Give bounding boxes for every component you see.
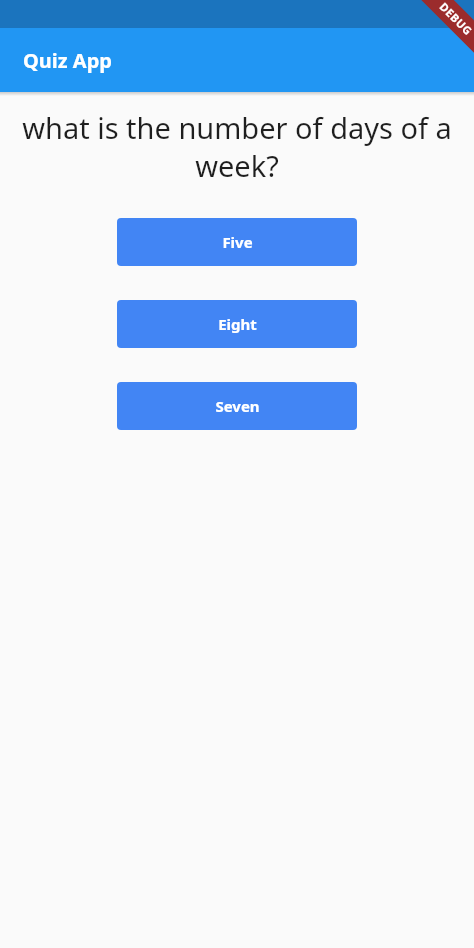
staticText: Eight [218, 314, 257, 334]
staticText: Five [222, 232, 253, 252]
staticText: DEBUG [437, 0, 474, 39]
staticText: Seven [215, 396, 260, 416]
staticText: Quiz App [23, 47, 112, 74]
staticText: what is the number of days of a week? [18, 108, 456, 185]
other: Debug build banner [398, 0, 474, 76]
button[interactable]: Seven [117, 382, 357, 430]
button[interactable]: Five [117, 218, 357, 266]
button[interactable]: Eight [117, 300, 357, 348]
